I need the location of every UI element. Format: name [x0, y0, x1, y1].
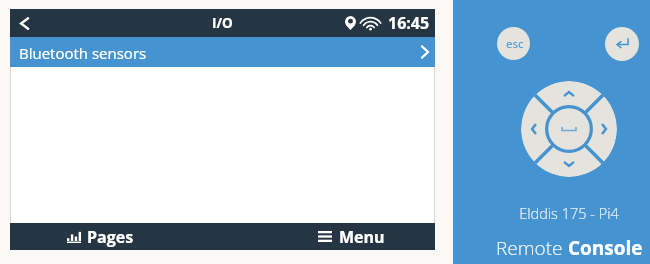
staticText: Remote	[496, 235, 568, 261]
button[interactable]: Directional pad	[521, 81, 617, 177]
staticText: I/O	[212, 14, 233, 32]
staticText: Pages	[87, 226, 134, 248]
button[interactable]: Back	[10, 9, 38, 37]
staticText: esc	[506, 36, 524, 52]
button[interactable]: esc	[497, 27, 530, 60]
staticText: 16:45	[388, 12, 430, 34]
button[interactable]: Enter	[605, 27, 639, 61]
staticText: Elddis 175 - Pi4	[519, 204, 619, 224]
button[interactable]: Bluetooth sensors	[10, 37, 435, 67]
button[interactable]: Pages	[67, 223, 134, 250]
staticText: Console	[568, 235, 643, 261]
staticText: Menu	[339, 226, 385, 248]
button[interactable]: Menu	[318, 223, 385, 250]
staticText: Bluetooth sensors	[19, 43, 147, 63]
